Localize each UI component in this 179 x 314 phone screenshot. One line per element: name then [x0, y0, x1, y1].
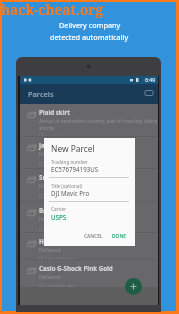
staticText: hack-cheat.org: [1, 0, 103, 19]
staticText: Headphones: [39, 237, 78, 245]
staticText: 2 months ago: [44, 283, 76, 287]
staticText: Plaid skirt: [39, 108, 71, 116]
staticText: shortly: [39, 125, 55, 132]
staticText: EC576794193US: [51, 165, 99, 173]
staticText: CANCEL: [84, 233, 103, 240]
button[interactable]: Plaid skirt: [20, 104, 158, 136]
button[interactable]: Parcels: [20, 84, 158, 104]
staticText: Sneakers: [39, 173, 68, 181]
button[interactable]: CANCEL: [82, 231, 105, 242]
staticText: Backpack: [39, 206, 69, 214]
staticText: detected automatically: [50, 32, 129, 42]
staticText: Jacket: [39, 141, 59, 149]
staticText: In transit: [39, 151, 60, 158]
staticText: USPS: [51, 213, 67, 221]
staticText: Tracking number: [51, 159, 88, 165]
button[interactable]: DONE: [110, 231, 128, 242]
staticText: Delivered: [39, 274, 61, 281]
staticText: Casio G-Shock Pink Gold: [39, 264, 113, 272]
staticText: New Parcel: [51, 143, 95, 154]
staticText: DONE: [112, 233, 126, 240]
staticText: 6:49: [145, 76, 156, 83]
staticText: 4 months ago: [44, 256, 76, 259]
staticText: In transit: [39, 216, 60, 223]
button[interactable]: Sneakers: [20, 169, 158, 201]
staticText: Arrival at destination country, wait of …: [39, 118, 157, 125]
staticText: DJI Mavic Pro: [51, 189, 90, 197]
staticText: Delivered: [39, 247, 61, 254]
button[interactable]: Backpack: [20, 202, 158, 232]
button[interactable]: Add parcel: [125, 278, 142, 295]
staticText: Carrier: [51, 206, 66, 212]
staticText: Title (optional): [51, 183, 82, 189]
staticText: 3 months ago: [44, 160, 76, 167]
button[interactable]: Headphones: [20, 233, 158, 259]
staticText: 3 months ago: [44, 192, 76, 199]
button[interactable]: Casio G-Shock Pink Gold: [20, 260, 158, 287]
button[interactable]: Jacket: [20, 137, 158, 168]
staticText: Parcels: [28, 89, 54, 99]
button[interactable]: Feedback: [140, 84, 158, 104]
staticText: Delivery company: [59, 20, 121, 30]
staticText: In transit: [39, 183, 60, 190]
